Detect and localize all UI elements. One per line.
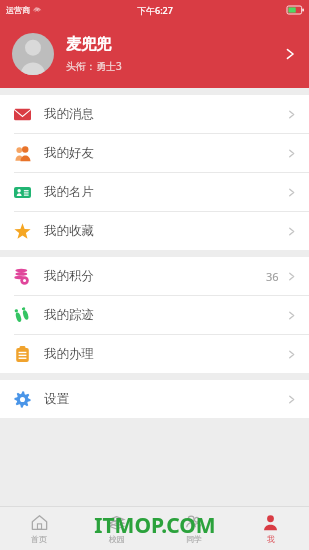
staticText: 麦兜兜 (66, 35, 111, 54)
button[interactable]: 首页 (0, 507, 78, 550)
button[interactable]: 我的收藏 (0, 212, 309, 250)
button[interactable]: 同学 (155, 507, 232, 550)
button[interactable]: 我的办理 (0, 335, 309, 373)
staticText: 同学 (186, 534, 202, 544)
staticText: 我的办理 (44, 346, 94, 362)
staticText: 设置 (44, 391, 69, 407)
button[interactable]: 我的积分 (0, 257, 309, 295)
staticText: 我的好友 (44, 145, 94, 161)
button[interactable]: 我的好友 (0, 134, 309, 172)
button[interactable]: 我的消息 (0, 95, 309, 133)
button[interactable]: 我的名片 (0, 173, 309, 211)
staticText: 我 (267, 534, 275, 544)
staticText: 我的收藏 (44, 223, 94, 239)
button[interactable]: 麦兜兜 (0, 20, 309, 88)
staticText: 首页 (31, 534, 47, 544)
staticText: 下午6:27 (137, 4, 173, 16)
staticText: 头衔：勇士3 (66, 59, 122, 73)
button[interactable]: 校园 (78, 507, 155, 550)
button[interactable]: 我的踪迹 (0, 296, 309, 334)
staticText: 我的消息 (44, 106, 94, 122)
staticText: ITMOP.COM (94, 511, 216, 540)
staticText: 我的名片 (44, 184, 94, 200)
other: Open profile (283, 47, 297, 61)
button[interactable]: 设置 (0, 380, 309, 418)
staticText: 我的积分 (44, 268, 94, 284)
staticText: 运营商 (6, 5, 30, 15)
staticText: 我的踪迹 (44, 307, 94, 323)
staticText: 36 (266, 269, 279, 284)
button[interactable]: 我 (232, 507, 309, 550)
staticText: 校园 (109, 534, 125, 544)
